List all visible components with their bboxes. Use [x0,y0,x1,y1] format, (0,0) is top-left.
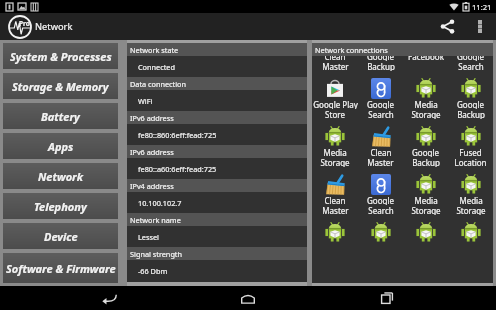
button[interactable]: Software & Firmware [3,253,118,283]
staticText: IPv6 address [130,113,174,123]
staticText: Clean [370,147,392,157]
staticText: Search [368,109,394,119]
staticText: IPv4 address [130,181,174,191]
staticText: Telephony [34,199,87,214]
staticText: Battery [41,109,80,124]
staticText: Store [325,109,345,119]
button[interactable]: Google [358,56,403,73]
staticText: Facebook [408,56,444,61]
button[interactable]: Google [403,121,448,169]
button[interactable]: fe80::a60:6eff:fead:725 [127,158,307,179]
staticText: Pro [19,19,30,28]
button[interactable] [312,217,358,265]
staticText: Google [367,56,394,61]
staticText: Media [323,147,347,157]
staticText: Backup [367,61,395,71]
staticText: Media [459,195,483,205]
button[interactable]: Media [312,121,358,169]
staticText: Storage & Memory [12,79,109,94]
staticText: Data connection [130,79,187,89]
staticText: Signal strength [130,249,183,259]
button[interactable]: Apps [3,133,118,159]
button[interactable]: Share [428,13,466,40]
staticText: Location [454,157,487,167]
staticText: Network [38,169,83,184]
staticText: Storage [411,109,441,119]
staticText: Google [457,56,484,61]
staticText: fe80::860:6eff:fead:725 [138,130,217,140]
button[interactable]: WiFi [127,90,307,111]
button[interactable] [448,217,493,265]
staticText: Google [367,195,394,205]
staticText: Master [367,157,394,167]
button[interactable] [403,217,448,265]
staticText: 11:21 [472,2,492,12]
button[interactable]: Recents [357,286,417,310]
button[interactable]: Network [3,163,118,189]
button[interactable]: Back [79,286,139,310]
staticText: Google Play [313,99,358,109]
button[interactable]: Clean [312,169,358,217]
staticText: Lessel [138,232,159,242]
button[interactable]: Google [358,73,403,121]
staticText: Clean [324,56,346,61]
button[interactable]: Telephony [3,193,118,219]
button[interactable]: System & Processes [3,43,118,69]
staticText: Storage [320,157,350,167]
button[interactable]: Device [3,223,118,249]
staticText: System & Processes [10,49,112,64]
staticText: Software & Firmware [6,261,116,276]
button[interactable]: Google [358,169,403,217]
staticText: IPv6 address [130,147,174,157]
staticText: Device [44,229,78,244]
staticText: Storage [456,205,486,215]
button[interactable]: Battery [3,103,118,129]
button[interactable]: -66 Dbm [127,260,307,281]
button[interactable]: Storage & Memory [3,73,118,99]
staticText: Media [414,99,438,109]
button[interactable]: Google [448,73,493,121]
staticText: Backup [412,157,440,167]
button[interactable]: Media [448,169,493,217]
staticText: Network state [130,45,179,55]
staticText: Network connections [315,45,388,55]
button[interactable]: Media [403,169,448,217]
staticText: WiFi [138,96,153,106]
staticText: Network name [130,215,181,225]
staticText: Backup [457,109,485,119]
button[interactable]: Google Play [312,73,358,121]
button[interactable]: Google [448,56,493,73]
staticText: Master [322,205,349,215]
button[interactable]: Home [218,286,278,310]
button[interactable]: Fused [448,121,493,169]
staticText: Google [367,99,394,109]
staticText: Apps [48,139,74,154]
staticText: Google [457,99,484,109]
staticText: Master [322,61,349,71]
staticText: -66 Dbm [138,266,168,276]
button[interactable]: Media [403,73,448,121]
button[interactable] [358,217,403,265]
button[interactable]: Lessel [127,226,307,247]
button[interactable]: Facebook [403,56,448,73]
button[interactable]: Clean [312,56,358,73]
button[interactable]: Connected [127,56,307,77]
staticText: Clean [324,195,346,205]
staticText: fe80::a60:6eff:fead:725 [138,164,217,174]
staticText: Media [414,195,438,205]
staticText: Search [458,61,484,71]
staticText: Connected [138,62,175,72]
staticText: Network [35,20,73,33]
staticText: Storage [411,205,441,215]
button[interactable]: fe80::860:6eff:fead:725 [127,124,307,145]
staticText: 10.100.102.7 [138,198,182,208]
staticText: Google [412,147,439,157]
staticText: Fused [459,147,482,157]
button[interactable]: 10.100.102.7 [127,192,307,213]
button[interactable]: Clean [358,121,403,169]
button[interactable]: More options [466,13,494,40]
staticText: Search [368,205,394,215]
